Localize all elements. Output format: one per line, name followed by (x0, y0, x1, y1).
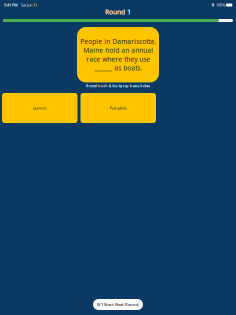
staticText: 9:41 PM (4, 2, 18, 8)
staticText: 100% (216, 2, 225, 8)
button[interactable]: pumice (2, 93, 77, 123)
staticText: pumice (33, 105, 46, 111)
staticText: Sat Jun 11 (18, 2, 37, 8)
staticText: Round 1 (105, 8, 131, 16)
staticText: Reveal truth & lies by tap boxes below (81, 83, 154, 89)
staticText: 0/1 Start Next Round (97, 302, 139, 307)
button[interactable]: Pumpkins (80, 93, 156, 123)
staticText: Pumpkins (110, 105, 127, 111)
button[interactable]: 0/1 Start Next Round (93, 299, 143, 310)
staticText: People in Damariscotta, Maine hold an an… (80, 37, 156, 72)
